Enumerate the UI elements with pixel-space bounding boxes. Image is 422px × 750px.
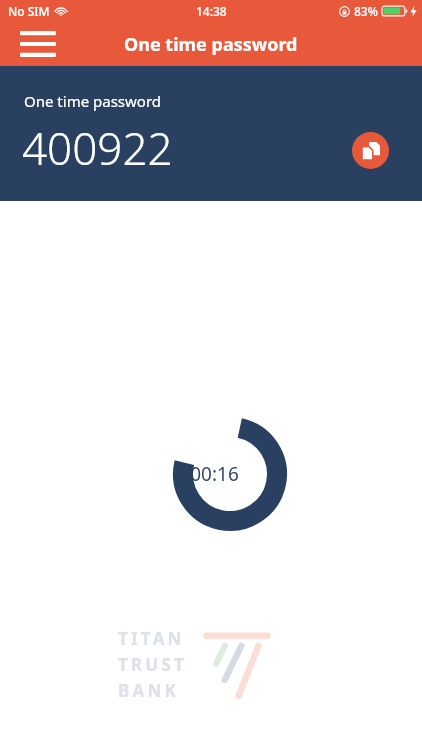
staticText: No SIM	[8, 3, 50, 19]
staticText: One time password	[124, 32, 298, 57]
button[interactable]: Open navigation menu	[12, 22, 64, 66]
staticText: One time password	[24, 91, 162, 111]
staticText: 00:16	[190, 461, 239, 487]
staticText: 400922	[22, 118, 173, 178]
staticText: TITAN	[118, 627, 185, 650]
staticText: BANK	[118, 679, 179, 702]
staticText: 83%	[354, 3, 378, 19]
button[interactable]: Copy one time password	[352, 132, 389, 169]
staticText: 14:38	[196, 3, 227, 19]
staticText: TRUST	[118, 653, 187, 676]
